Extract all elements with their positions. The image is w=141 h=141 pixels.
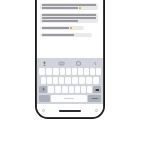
button[interactable]: Key	[46, 68, 52, 75]
button[interactable]: Key	[79, 77, 85, 84]
button[interactable]: Key	[41, 77, 46, 84]
button[interactable]: Return	[88, 95, 101, 102]
button[interactable]: Key	[84, 68, 89, 75]
button[interactable]	[40, 26, 84, 30]
button[interactable]: Key	[48, 86, 54, 93]
button[interactable]: Key	[75, 86, 80, 93]
button[interactable]: Key	[86, 77, 92, 84]
button[interactable]: Key	[53, 68, 59, 75]
button[interactable]	[40, 13, 98, 23]
button[interactable]: Space	[51, 95, 87, 102]
button[interactable]	[40, 3, 98, 10]
button[interactable]: Key	[81, 86, 86, 93]
button[interactable]: Flashlight	[41, 108, 46, 113]
button[interactable]: Key	[66, 68, 71, 75]
button[interactable]: Key	[93, 77, 99, 84]
button[interactable]: Key	[69, 86, 74, 93]
button[interactable]: Key	[59, 77, 64, 84]
button[interactable]: Key	[47, 77, 52, 84]
button[interactable]: Key	[55, 86, 61, 93]
button[interactable]: Key	[96, 68, 101, 75]
button[interactable]: More	[91, 59, 100, 67]
button[interactable]	[40, 33, 92, 37]
button[interactable]: Emoji	[40, 59, 49, 67]
button[interactable]: Key	[60, 68, 65, 75]
button[interactable]: Key	[39, 68, 45, 75]
button[interactable]: Sticker	[74, 59, 83, 67]
button[interactable]: Key	[90, 68, 95, 75]
button[interactable]: Key	[78, 68, 83, 75]
button[interactable]: Key	[65, 77, 71, 84]
button[interactable]: Camera	[94, 108, 99, 113]
button[interactable]: Shift	[39, 86, 47, 93]
button[interactable]: Key	[72, 77, 78, 84]
button[interactable]: Key	[53, 77, 58, 84]
button[interactable]: Key	[87, 86, 92, 93]
button[interactable]: Keyboard	[57, 59, 66, 67]
button[interactable]: Backspace	[93, 86, 101, 93]
button[interactable]: Key	[72, 68, 77, 75]
button[interactable]: Key	[62, 86, 68, 93]
